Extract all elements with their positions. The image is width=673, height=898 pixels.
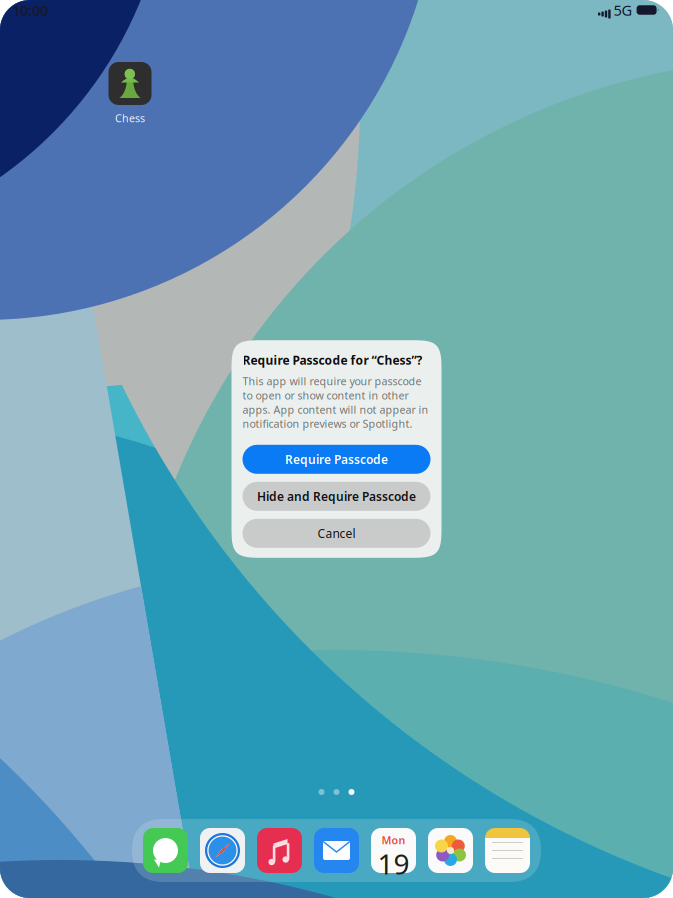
staticText: Chess — [115, 111, 145, 125]
button[interactable]: Cancel — [242, 519, 430, 548]
staticText: Mon — [381, 833, 405, 847]
staticText: 5G — [614, 0, 633, 20]
button[interactable]: Chess — [102, 62, 158, 125]
staticText: Require Passcode for “Chess”? — [242, 352, 422, 368]
button[interactable]: Calendar — [371, 828, 416, 873]
button[interactable]: Music — [257, 828, 302, 873]
button[interactable]: Messages — [143, 828, 188, 873]
button[interactable]: Mail — [314, 828, 359, 873]
staticText: 19 — [377, 845, 409, 882]
staticText: This app will require your passcode to o… — [242, 374, 428, 431]
button[interactable]: Hide and Require Passcode — [242, 482, 430, 511]
staticText: Hide and Require Passcode — [257, 488, 416, 504]
button[interactable]: Photos — [428, 828, 473, 873]
staticText: Require Passcode — [285, 451, 388, 467]
staticText: Cancel — [317, 525, 355, 541]
button[interactable]: Notes — [485, 828, 530, 873]
button[interactable]: Safari — [200, 828, 245, 873]
staticText: 10:00 — [12, 0, 48, 20]
button[interactable]: Require Passcode — [242, 445, 430, 474]
